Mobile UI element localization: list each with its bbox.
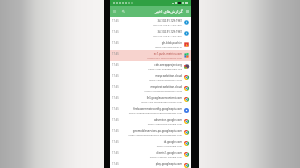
staticText: 34.102.91.129:1981 [157, 30, 182, 34]
staticText: tcp://34.102.91.129:1981 [153, 34, 182, 37]
staticText: 17:45 [112, 41, 119, 45]
staticText: ec1.push-metrics.com [153, 52, 182, 56]
staticText: https://firebaseremoteconfig.googleapis.… [128, 111, 182, 114]
button[interactable]: 17:45 [110, 149, 191, 160]
staticText: 17:45 [112, 162, 119, 166]
staticText: https://gh-blob.push.in [154, 45, 182, 48]
staticText: 17:45 [112, 52, 119, 56]
button[interactable]: 17:45 [110, 160, 191, 168]
staticText: https://geomobileservices-pa.googleapis.… [128, 133, 182, 136]
staticText: tcp://34.102.91.129:1981 [153, 23, 182, 26]
button[interactable]: 17:45 [110, 39, 191, 50]
staticText: 17:45 [112, 140, 119, 144]
staticText: 17:45 [112, 63, 119, 67]
staticText: play.googleapis.com [155, 162, 182, 166]
staticText: https://adservice.google.com [147, 122, 182, 125]
button[interactable]: 17:45 [110, 28, 191, 39]
staticText: https://ec1.push-metrics.com [147, 56, 182, 59]
staticText: https://mssptest.webtitan.cloud [144, 89, 182, 92]
staticText: cdn.oneqaproject.org [154, 63, 182, 67]
button[interactable]: 17:45 [110, 72, 191, 83]
button[interactable]: Filter [183, 6, 191, 17]
staticText: 34.102.91.129:1981 [157, 19, 182, 23]
staticText: 17:45 [112, 85, 119, 89]
staticText: 17:45 [112, 107, 119, 111]
button[interactable]: 17:45 [110, 94, 191, 105]
staticText: clients1.google.com [156, 151, 182, 155]
staticText: 17:45 [112, 30, 119, 34]
staticText: https://clients1.google.com [149, 155, 182, 158]
staticText: id.google.com [163, 140, 182, 144]
staticText: 17:45 [112, 118, 119, 122]
staticText: lh3.googleusercontent.com [146, 96, 182, 100]
button[interactable]: 17:45 [110, 83, 191, 94]
button[interactable]: 17:45 [110, 138, 191, 149]
button[interactable]: 17:45 [110, 116, 191, 127]
staticText: 17:45 [112, 74, 119, 78]
staticText: 17:45 [112, 129, 119, 133]
button[interactable]: 17:45 [110, 17, 191, 28]
staticText: firebaseremoteconfig.googleapis.com [133, 107, 182, 111]
button[interactable]: Navigation menu [110, 6, 119, 17]
staticText: adservice.google.com [153, 118, 182, 122]
staticText: geomobileservices-pa.googleapis.com [132, 129, 182, 133]
button[interactable]: 17:45 [110, 61, 191, 72]
staticText: گزارش‌های اخیر [155, 9, 183, 15]
staticText: 17:45 [112, 96, 119, 100]
button[interactable]: 17:45 [110, 127, 191, 138]
button[interactable]: 17:45 [110, 50, 191, 61]
staticText: 17:45 [112, 151, 119, 155]
button[interactable]: 17:45 [110, 105, 191, 116]
staticText: https://mssp.webtitan.cloud [149, 78, 182, 81]
button[interactable]: Search [119, 6, 128, 17]
staticText: mssptest.webtitan.cloud [150, 85, 182, 89]
staticText: https://lh3.googleusercontent.com [141, 100, 182, 103]
staticText: https://id.google.com [156, 144, 182, 147]
staticText: 17:45 [112, 19, 119, 23]
staticText: mssp.webtitan.cloud [155, 74, 182, 78]
staticText: https://cdn.oneqaproject.org [148, 67, 182, 70]
staticText: gh-blob.push.in [161, 41, 182, 45]
